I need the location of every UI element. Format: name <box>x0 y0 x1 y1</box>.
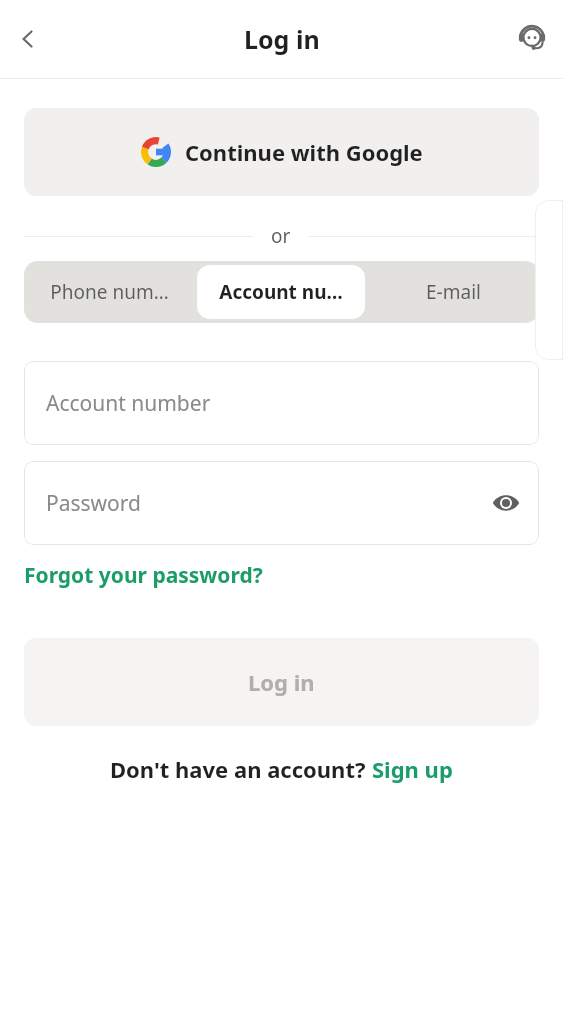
button[interactable]: Account nu… <box>197 265 365 319</box>
staticText: Forgot your password? <box>24 561 263 590</box>
button[interactable]: Continue with Google <box>24 108 539 196</box>
button[interactable]: Forgot your password? <box>24 559 263 592</box>
button[interactable]: Password <box>24 461 539 545</box>
button[interactable]: E-mail <box>367 265 539 319</box>
button[interactable]: Sign up <box>372 754 453 784</box>
button[interactable]: Customer support <box>509 16 555 62</box>
staticText: Log in <box>248 667 315 697</box>
staticText: Log in <box>244 22 320 56</box>
staticText: Phone num… <box>50 279 169 305</box>
staticText: Continue with Google <box>185 137 423 167</box>
button[interactable]: Account number <box>24 361 539 445</box>
staticText: Sign up <box>372 754 453 784</box>
staticText: Password <box>46 489 141 518</box>
staticText: Account number <box>46 389 211 418</box>
button[interactable]: Log in <box>24 638 539 726</box>
staticText: Account nu… <box>219 279 343 305</box>
button[interactable]: Phone num… <box>24 265 195 319</box>
staticText: Don't have an account? <box>110 754 372 784</box>
button[interactable]: Show password <box>483 480 529 526</box>
staticText: E-mail <box>426 279 481 305</box>
staticText: or <box>271 223 291 249</box>
button[interactable]: Back <box>6 17 50 61</box>
